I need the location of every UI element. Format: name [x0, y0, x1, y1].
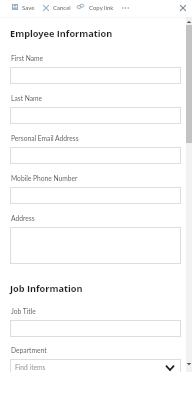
- staticText: Copy link: [89, 4, 114, 11]
- button[interactable]: Find items: [10, 359, 181, 376]
- staticText: Save: [22, 4, 35, 11]
- staticText: Find items: [15, 363, 46, 371]
- staticText: Address: [11, 214, 35, 222]
- staticText: Cancel: [53, 4, 71, 11]
- button[interactable]: [10, 187, 181, 204]
- staticText: Last Name: [11, 94, 43, 102]
- button[interactable]: [10, 227, 181, 264]
- staticText: Personal Email Address: [11, 134, 79, 142]
- button[interactable]: Save: [9, 0, 35, 16]
- staticText: Job Title: [11, 307, 36, 315]
- button[interactable]: [10, 107, 181, 124]
- button[interactable]: [10, 67, 181, 84]
- staticText: First Name: [11, 54, 44, 62]
- staticText: Employee Information: [10, 27, 113, 40]
- button[interactable]: More commands: [118, 1, 133, 15]
- staticText: Job Information: [10, 282, 83, 295]
- button[interactable]: Copy link: [74, 0, 116, 16]
- button[interactable]: Cancel: [40, 0, 72, 16]
- button[interactable]: Close: [176, 1, 190, 15]
- button[interactable]: [10, 147, 181, 164]
- staticText: Mobile Phone Number: [11, 174, 78, 182]
- staticText: Department: [11, 346, 47, 354]
- button[interactable]: [10, 320, 181, 337]
